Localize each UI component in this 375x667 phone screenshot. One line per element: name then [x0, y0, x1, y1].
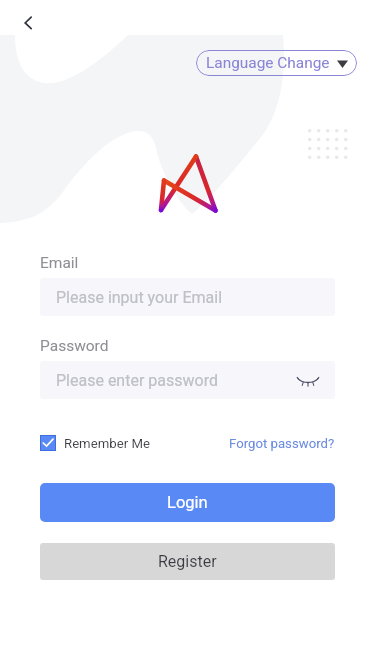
button[interactable]: Please input your Email: [40, 278, 335, 316]
button[interactable]: Show password: [293, 365, 323, 395]
button[interactable]: Back: [6, 0, 50, 44]
staticText: Email: [40, 254, 79, 272]
staticText: Password: [40, 337, 109, 355]
staticText: Please enter password: [56, 371, 218, 390]
button[interactable]: Forgot password?: [229, 436, 335, 451]
staticText: Login: [167, 493, 208, 512]
button[interactable]: Login: [40, 483, 335, 522]
button[interactable]: Register: [40, 543, 335, 580]
button[interactable]: Language Change: [196, 50, 357, 76]
staticText: Please input your Email: [56, 288, 223, 307]
staticText: Remember Me: [64, 436, 150, 451]
staticText: Forgot password?: [229, 436, 335, 451]
button[interactable]: Remember Me: [40, 435, 150, 451]
staticText: Register: [158, 552, 217, 571]
staticText: Language Change: [206, 54, 330, 72]
button[interactable]: Please enter password: [40, 361, 335, 399]
